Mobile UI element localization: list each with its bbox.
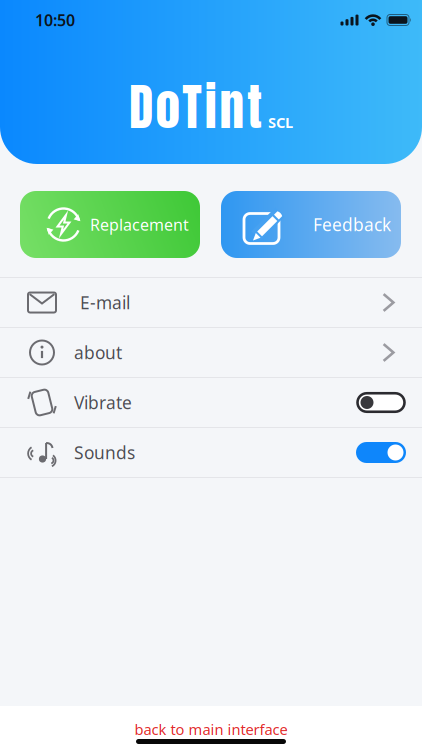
staticText: back to main interface bbox=[134, 719, 287, 739]
staticText: E-mail bbox=[80, 291, 130, 314]
staticText: Feedback bbox=[313, 213, 391, 236]
button[interactable]: Feedback bbox=[221, 191, 401, 258]
staticText: SCL bbox=[268, 112, 293, 132]
staticText: Sounds bbox=[74, 441, 135, 464]
staticText: 10:50 bbox=[35, 9, 75, 31]
button[interactable]: E-mail bbox=[0, 278, 422, 327]
button[interactable]: Sounds bbox=[356, 442, 406, 463]
button[interactable]: about bbox=[0, 328, 422, 377]
staticText: about bbox=[74, 341, 122, 364]
staticText: Replacement bbox=[90, 214, 189, 235]
staticText: DoTint bbox=[129, 70, 262, 144]
button[interactable]: Vibrate bbox=[356, 392, 406, 413]
staticText: Vibrate bbox=[74, 391, 132, 414]
button[interactable]: Replacement bbox=[20, 191, 200, 258]
button[interactable]: back to main interface bbox=[134, 719, 287, 739]
